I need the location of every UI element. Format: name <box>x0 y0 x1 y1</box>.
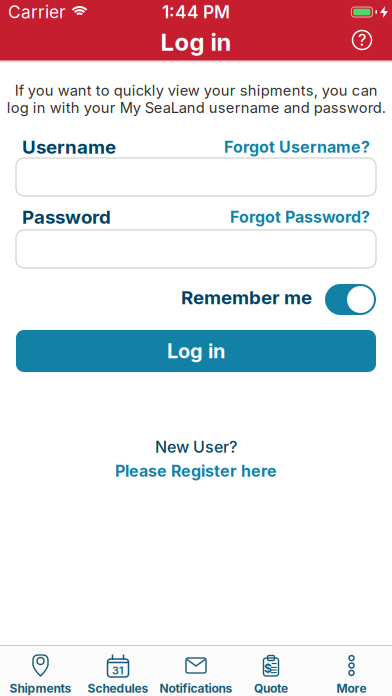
staticText: If you want to quickly view your shipmen… <box>6 82 385 116</box>
staticText: Quote <box>254 681 288 696</box>
button[interactable]: 31 <box>79 646 157 696</box>
staticText: New User? <box>155 438 237 456</box>
staticText: Remember me <box>181 286 312 308</box>
staticText: More <box>336 681 366 696</box>
button[interactable]: Please Register here <box>115 462 277 480</box>
staticText: Please Register here <box>115 462 277 480</box>
staticText: 1:44 PM <box>162 2 230 22</box>
button[interactable]: More <box>312 646 390 696</box>
button[interactable]: Password <box>16 230 376 268</box>
button[interactable]: Forgot Password? <box>230 208 370 226</box>
staticText: Schedules <box>87 681 148 696</box>
staticText: ? <box>358 31 366 49</box>
staticText: $ <box>264 661 272 676</box>
staticText: Carrier <box>8 2 66 22</box>
button[interactable]: Shipments <box>1 646 79 696</box>
staticText: Forgot Username? <box>224 138 370 156</box>
button[interactable]: Notifications <box>157 646 235 696</box>
button[interactable]: Log in <box>16 330 376 372</box>
staticText: Log in <box>160 28 231 56</box>
button[interactable]: Remember me <box>325 284 376 315</box>
staticText: Shipments <box>9 681 71 696</box>
staticText: Notifications <box>159 681 232 696</box>
staticText: Log in <box>167 339 225 363</box>
button[interactable]: Help <box>347 25 377 55</box>
button[interactable]: $ <box>232 646 310 696</box>
button[interactable]: Username <box>16 158 376 196</box>
staticText: Username <box>22 136 116 158</box>
staticText: Forgot Password? <box>230 208 370 226</box>
staticText: Password <box>22 206 111 228</box>
staticText: 31 <box>112 664 124 677</box>
button[interactable]: Forgot Username? <box>224 138 370 156</box>
